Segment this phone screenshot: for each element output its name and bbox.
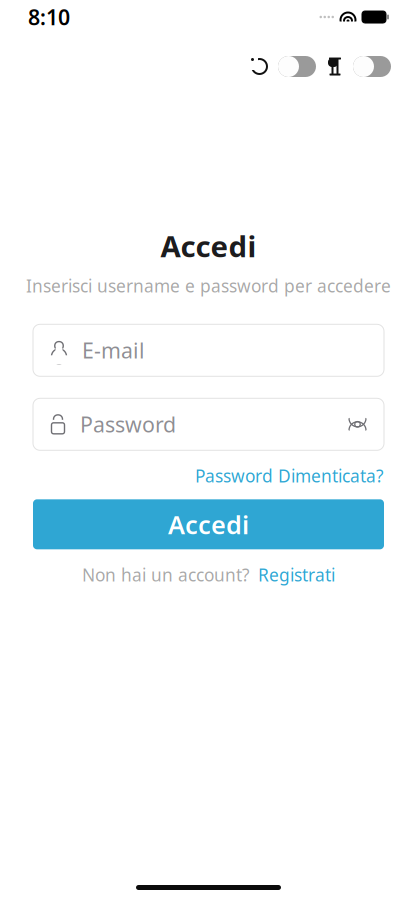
- staticText: Password Dimenticata?: [195, 464, 384, 487]
- button[interactable]: E-mail: [33, 324, 384, 376]
- staticText: Password: [80, 410, 176, 438]
- staticText: Inserisci username e password per accede…: [26, 274, 391, 297]
- staticText: Non hai un account?: [82, 563, 250, 586]
- staticText: Accedi: [160, 226, 256, 265]
- button[interactable]: Password Dimenticata?: [195, 464, 384, 487]
- button[interactable]: Text size: [326, 56, 391, 77]
- staticText: 8:10: [28, 3, 70, 31]
- staticText: Accedi: [168, 507, 249, 541]
- staticText: Registrati: [258, 563, 335, 586]
- staticText: E-mail: [82, 336, 145, 364]
- button[interactable]: Registrati: [258, 563, 335, 586]
- button[interactable]: Dark mode: [250, 56, 316, 77]
- button[interactable]: Password: [33, 398, 384, 450]
- button[interactable]: Accedi: [33, 499, 384, 549]
